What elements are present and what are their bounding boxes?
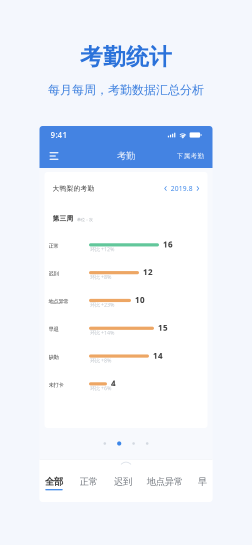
staticText: 环比 +8%	[90, 357, 111, 364]
staticText: 10	[135, 295, 145, 305]
staticText: 环比 +14%	[90, 329, 114, 336]
staticText: 12	[143, 267, 153, 277]
button[interactable]: 2019.8	[164, 181, 199, 196]
button[interactable]: 下属考勤	[176, 148, 204, 164]
button[interactable]: 菜单	[47, 147, 61, 165]
staticText: 9:41	[50, 130, 67, 140]
staticText: 缺勤	[48, 354, 58, 360]
button[interactable]: 地点异常	[149, 465, 181, 490]
staticText: 每月每周，考勤数据汇总分析	[48, 83, 204, 97]
staticText: 未打卡	[48, 382, 63, 388]
staticText: 地点异常	[48, 298, 68, 305]
staticText: 14	[153, 350, 163, 361]
staticText: 考勤	[117, 150, 135, 162]
staticText: 4	[111, 378, 116, 389]
staticText: 正常	[79, 476, 97, 487]
staticText: 单位：次	[77, 217, 93, 222]
staticText: 环比 +8%	[90, 273, 111, 281]
staticText: 早退	[48, 326, 58, 333]
button[interactable]: 早	[198, 465, 207, 490]
staticText: 迟到	[114, 476, 132, 487]
button[interactable]: 全部	[45, 465, 63, 490]
staticText: 环比 +6%	[90, 385, 111, 392]
staticText: 早	[198, 476, 207, 487]
staticText: 2019.8	[171, 184, 193, 193]
staticText: 地点异常	[147, 476, 183, 487]
staticText: 环比 +23%	[90, 301, 114, 308]
staticText: 第三周	[52, 214, 73, 223]
staticText: 迟到	[48, 270, 58, 277]
staticText: 16	[163, 239, 173, 250]
staticText: 环比 +12%	[90, 246, 114, 253]
staticText: 考勤统计	[80, 43, 172, 71]
staticText: 下属考勤	[176, 152, 204, 160]
staticText: 正常	[48, 243, 58, 249]
staticText: 大鸭梨的考勤	[52, 184, 94, 193]
staticText: 15	[158, 322, 168, 333]
button[interactable]: 迟到	[114, 465, 132, 490]
staticText: 全部	[45, 476, 63, 487]
button[interactable]: 正常	[80, 465, 97, 490]
